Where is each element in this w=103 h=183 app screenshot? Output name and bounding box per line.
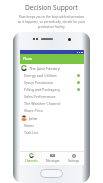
staticText: Flow <box>23 56 32 62</box>
staticText: Flow keeps you in the loop with informat… <box>0 15 103 29</box>
staticText: Notes <box>24 123 34 128</box>
staticText: The Weather Channel <box>24 101 61 106</box>
staticText: Decision Support <box>0 3 103 12</box>
button[interactable]: Energy and Utilities <box>20 72 84 79</box>
button[interactable]: Messages <box>42 152 63 165</box>
button[interactable]: Sales Performance <box>20 93 84 100</box>
staticText: Messages <box>46 159 60 163</box>
staticText: Energy and Utilities <box>24 73 57 78</box>
button[interactable]: Notes <box>20 122 84 129</box>
staticText: Sales Performance <box>24 94 56 99</box>
staticText: Syrup Production <box>24 80 54 85</box>
button[interactable]: Flow <box>20 54 84 64</box>
staticText: John <box>29 116 38 121</box>
button[interactable]: Filling and Packaging <box>20 86 84 93</box>
staticText: Task List <box>24 130 39 135</box>
button[interactable]: Share Price <box>20 107 84 114</box>
staticText: Share Price <box>24 108 43 113</box>
button[interactable]: Channels <box>20 152 42 165</box>
button[interactable]: John <box>20 114 84 122</box>
button[interactable]: The Weather Channel <box>20 100 84 107</box>
staticText: Channels <box>25 159 38 163</box>
staticText: The Juice Factory <box>29 66 60 71</box>
button[interactable]: Task List <box>20 129 84 136</box>
button[interactable]: The Juice Factory <box>20 64 84 72</box>
staticText: Settings <box>68 159 79 163</box>
button[interactable]: Settings <box>63 152 84 165</box>
staticText: Filling and Packaging <box>24 87 60 92</box>
button[interactable]: Syrup Production <box>20 79 84 86</box>
